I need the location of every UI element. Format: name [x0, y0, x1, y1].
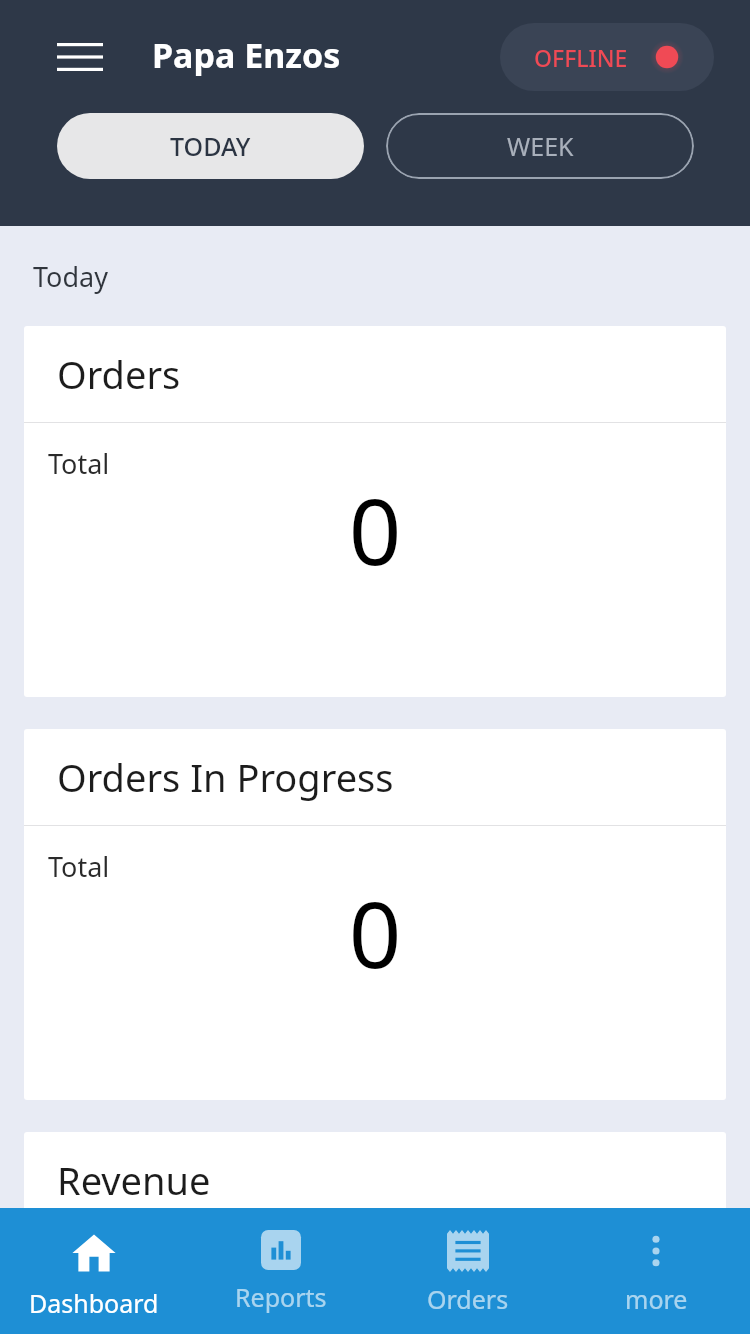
staticText: Dashboard [29, 1286, 159, 1320]
button[interactable]: Orders In Progress [24, 729, 726, 1100]
staticText: Orders [427, 1282, 509, 1316]
button[interactable]: Revenue [24, 1132, 726, 1334]
staticText: Orders [57, 348, 181, 400]
button[interactable]: Open navigation menu [44, 21, 116, 93]
staticText: more [625, 1282, 688, 1316]
button[interactable]: Dashboard [0, 1208, 187, 1334]
button[interactable]: Orders [24, 326, 726, 697]
button[interactable]: WEEK [386, 113, 694, 179]
staticText: Total [48, 848, 110, 885]
staticText: Total [48, 445, 110, 482]
button[interactable]: Reports [187, 1208, 374, 1334]
staticText: Orders In Progress [57, 751, 394, 803]
staticText: WEEK [507, 129, 574, 163]
button[interactable]: TODAY [57, 113, 364, 179]
staticText: TODAY [170, 129, 251, 163]
button[interactable]: OFFLINE [500, 23, 714, 91]
staticText: Papa Enzos [152, 32, 341, 78]
button[interactable]: more [562, 1208, 750, 1334]
staticText: Total [48, 1251, 110, 1288]
button[interactable]: Orders [374, 1208, 562, 1334]
staticText: Reports [235, 1280, 327, 1314]
staticText: Today [33, 258, 108, 295]
staticText: Revenue [57, 1154, 211, 1206]
staticText: OFFLINE [534, 42, 628, 73]
staticText: 0 [24, 870, 726, 995]
staticText: 0 [24, 467, 726, 592]
